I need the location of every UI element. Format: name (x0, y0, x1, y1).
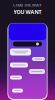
staticText: YOU WANT (13, 8, 41, 16)
staticText: CHAT THE WAY (13, 2, 42, 8)
button[interactable]: Send message (12, 89, 23, 93)
